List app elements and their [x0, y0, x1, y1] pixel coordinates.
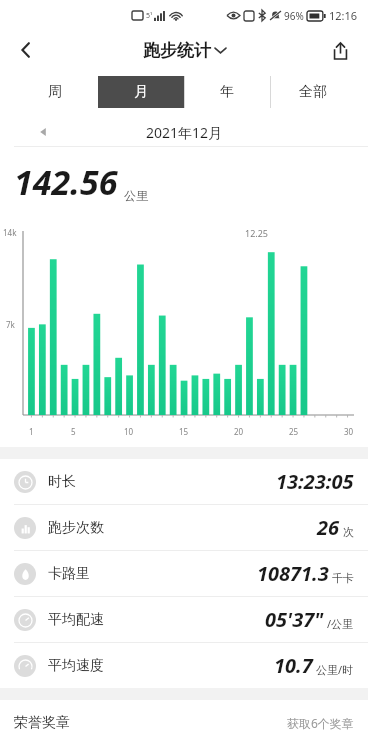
staticText: 10.7 — [274, 652, 313, 679]
button[interactable]: 卡路里 — [0, 551, 368, 596]
staticText: 跑步统计 — [143, 40, 211, 61]
staticText: 20 — [234, 426, 244, 437]
button[interactable]: 平均速度 — [0, 643, 368, 688]
staticText: 7k — [6, 319, 15, 330]
staticText: 30 — [344, 426, 354, 437]
button[interactable]: 周 — [12, 76, 98, 108]
staticText: 10 — [124, 426, 134, 437]
staticText: 96% — [284, 9, 304, 23]
staticText: 26 — [317, 514, 340, 541]
staticText: 142.56 — [14, 159, 118, 205]
staticText: 平均配速 — [48, 611, 104, 629]
staticText: 5¹ — [146, 11, 153, 21]
staticText: 12.25 — [245, 227, 269, 239]
staticText: 13:23:05 — [276, 468, 354, 495]
staticText: 公里/时 — [316, 662, 354, 677]
button[interactable]: Share — [320, 30, 360, 70]
button[interactable]: 跑步次数 — [0, 505, 368, 550]
staticText: 周 — [48, 83, 62, 101]
button[interactable]: 时长 — [0, 459, 368, 504]
button[interactable]: 跑步统计 — [143, 40, 226, 61]
button[interactable]: 年 — [184, 76, 270, 108]
staticText: 卡路里 — [48, 565, 90, 583]
staticText: 年 — [220, 83, 234, 101]
staticText: 月 — [134, 83, 148, 101]
staticText: 5 — [71, 426, 76, 437]
staticText: 05'37" — [265, 606, 324, 633]
staticText: 1 — [29, 426, 34, 437]
staticText: 10871.3 — [257, 560, 329, 587]
button[interactable]: Previous month — [30, 119, 56, 145]
staticText: /公里 — [327, 616, 354, 631]
button[interactable]: 荣誉奖章 — [0, 700, 368, 746]
staticText: 2021年12月 — [146, 123, 223, 142]
staticText: 12:16 — [329, 8, 358, 23]
staticText: 公里 — [124, 188, 148, 203]
button[interactable]: Back — [6, 30, 46, 70]
staticText: 荣誉奖章 — [14, 714, 70, 732]
staticText: 跑步次数 — [48, 519, 104, 537]
staticText: 15 — [179, 426, 189, 437]
staticText: 全部 — [299, 83, 327, 101]
staticText: 次 — [343, 525, 354, 539]
staticText: 千卡 — [332, 571, 354, 585]
staticText: 时长 — [48, 473, 76, 491]
staticText: 14k — [3, 227, 17, 238]
button[interactable]: 全部 — [270, 76, 356, 108]
button[interactable]: 月 — [98, 76, 184, 108]
staticText: 获取6个奖章 — [287, 715, 354, 731]
button[interactable]: 平均配速 — [0, 597, 368, 642]
staticText: 25 — [289, 426, 299, 437]
staticText: 平均速度 — [48, 657, 104, 675]
